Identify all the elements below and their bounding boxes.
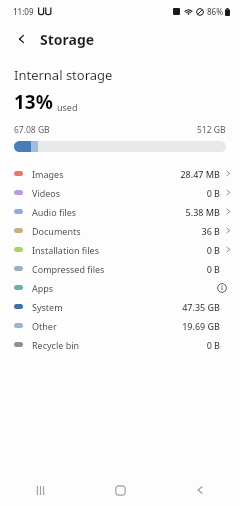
staticText: 0 B xyxy=(206,187,220,199)
button[interactable]: Other xyxy=(0,316,240,335)
button[interactable]: Videos xyxy=(0,183,240,202)
staticText: 36 B xyxy=(201,225,220,237)
button[interactable]: Compressed files xyxy=(0,259,240,278)
staticText: Other xyxy=(32,320,57,332)
staticText: 86% xyxy=(207,6,223,17)
button[interactable]: Recycle bin xyxy=(0,335,240,354)
staticText: used xyxy=(57,101,78,113)
button[interactable]: System xyxy=(0,297,240,316)
staticText: 5.38 MB xyxy=(185,206,220,218)
button[interactable]: Back xyxy=(160,474,240,506)
staticText: Installation files xyxy=(32,244,99,256)
button[interactable]: Home xyxy=(80,474,160,506)
staticText: Audio files xyxy=(32,206,77,218)
staticText: 0 B xyxy=(206,339,220,351)
staticText: Internal storage xyxy=(14,66,113,84)
staticText: 19.69 GB xyxy=(182,320,220,332)
button[interactable]: Apps xyxy=(0,278,240,297)
staticText: Videos xyxy=(32,187,61,199)
button[interactable]: Audio files xyxy=(0,202,240,221)
staticText: Compressed files xyxy=(32,263,105,275)
staticText: System xyxy=(32,301,63,313)
button[interactable]: Back xyxy=(11,28,33,50)
staticText: Documents xyxy=(32,225,81,237)
staticText: 67.08 GB xyxy=(14,124,50,136)
button[interactable]: Installation files xyxy=(0,240,240,259)
button[interactable]: Apps info xyxy=(215,281,228,294)
button[interactable]: Images xyxy=(0,164,240,183)
staticText: 0 B xyxy=(206,263,220,275)
staticText: Storage xyxy=(40,30,95,49)
staticText: Recycle bin xyxy=(32,339,80,351)
staticText: 11:09 xyxy=(13,6,34,17)
staticText: 0 B xyxy=(206,244,220,256)
staticText: Apps xyxy=(32,282,54,294)
staticText: 512 GB xyxy=(197,124,226,136)
button[interactable]: Recents xyxy=(0,474,80,506)
button[interactable]: Documents xyxy=(0,221,240,240)
staticText: Images xyxy=(32,168,64,180)
staticText: 13% xyxy=(14,89,53,115)
staticText: 47.35 GB xyxy=(182,301,220,313)
staticText: 28.47 MB xyxy=(180,168,220,180)
